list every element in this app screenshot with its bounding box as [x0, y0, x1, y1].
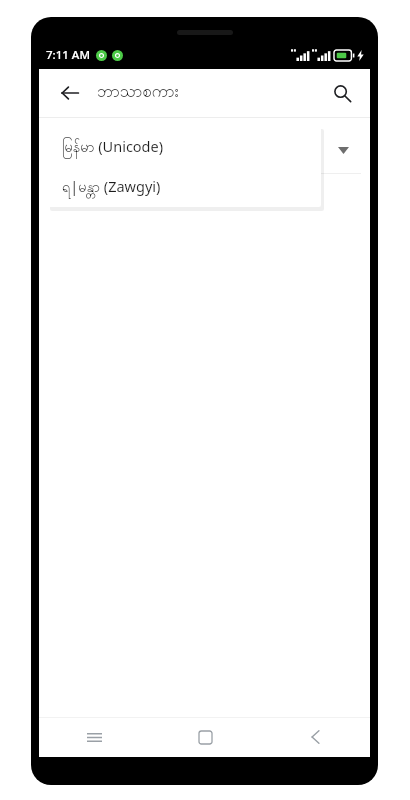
button[interactable]: Back: [260, 717, 370, 757]
button[interactable]: Back: [52, 75, 88, 111]
button[interactable]: မြန်မာ (Unicode): [48, 127, 321, 167]
button[interactable]: [48, 126, 361, 174]
button[interactable]: Search: [324, 75, 360, 111]
staticText: မြန်မာ (Unicode): [62, 136, 164, 159]
staticText: ရ|မန္တာ (Zawgyi): [62, 176, 161, 199]
staticText: 7:11 AM: [46, 47, 90, 63]
staticText: ဘာသာစကား: [97, 81, 179, 105]
button[interactable]: Recent apps: [39, 717, 150, 757]
button[interactable]: Home: [150, 717, 260, 757]
button[interactable]: ရ|မန္တာ (Zawgyi): [48, 167, 321, 207]
